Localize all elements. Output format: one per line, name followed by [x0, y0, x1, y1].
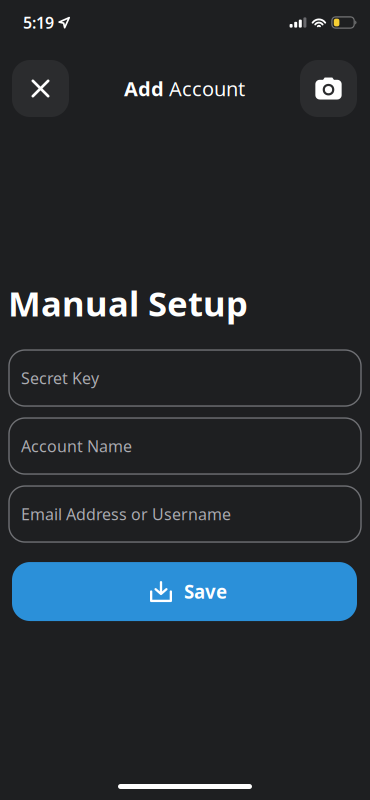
staticText: Secret Key — [21, 367, 99, 389]
button[interactable]: Save — [12, 562, 357, 621]
staticText: Account — [164, 75, 245, 102]
button[interactable]: Close — [12, 60, 69, 117]
staticText: Email Address or Username — [21, 503, 231, 525]
staticText: Manual Setup — [8, 280, 248, 326]
staticText: Save — [184, 579, 227, 604]
staticText: Account Name — [21, 435, 132, 457]
button[interactable]: Scan QR code with camera — [300, 60, 357, 117]
staticText: Add — [124, 75, 164, 102]
staticText: 5:19 — [23, 12, 54, 33]
